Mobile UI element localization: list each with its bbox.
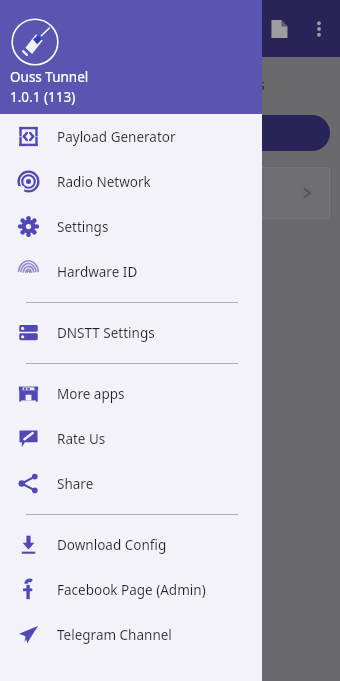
button[interactable]: Share [0,461,262,506]
button[interactable]: Payload Generator [0,114,262,159]
staticText: Download Config [57,536,167,554]
button[interactable]: Telegram Channel [0,612,262,657]
button[interactable] [200,115,330,151]
button[interactable]: Settings [0,204,262,249]
staticText: Radio Network [57,173,151,191]
staticText: Hardware ID [57,263,138,281]
button[interactable]: Radio Network [0,159,262,204]
button[interactable]: DNSTT Settings [0,310,262,355]
button[interactable]: Facebook Page (Admin) [0,567,262,612]
staticText: Payload Generator [57,128,176,146]
staticText: Ouss Tunnel [10,68,89,86]
button[interactable]: Download Config [0,522,262,567]
staticText: Facebook Page (Admin) [57,581,206,599]
staticText: DNSTT Settings [57,324,155,342]
button[interactable] [206,167,330,219]
button[interactable]: More options [306,16,332,42]
staticText: Share [57,475,94,493]
staticText: Settings [57,218,109,236]
button[interactable]: Rate Us [0,416,262,461]
staticText: Telegram Channel [57,626,172,644]
button[interactable]: More apps [0,371,262,416]
staticText: More apps [57,385,125,403]
staticText: Rate Us [57,430,106,448]
staticText: s [258,75,265,94]
button[interactable]: Hardware ID [0,249,262,294]
button[interactable]: Open config file [266,16,292,42]
staticText: 1.0.1 (113) [10,88,76,106]
